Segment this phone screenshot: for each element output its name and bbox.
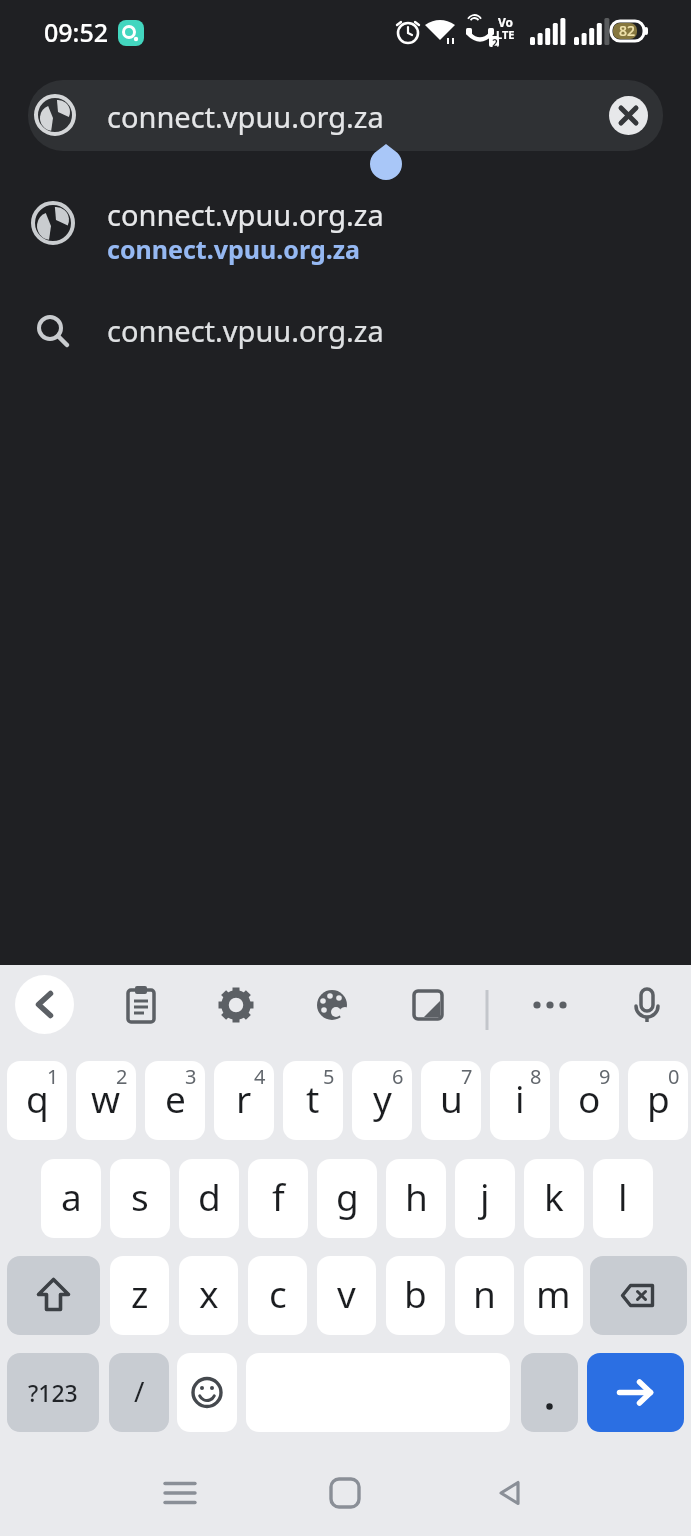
staticText: 3 [185, 1063, 197, 1090]
button[interactable] [315, 1463, 375, 1523]
staticText: connect.vpuu.org.za [107, 97, 384, 136]
button[interactable]: connect.vpuu.org.za [0, 300, 691, 364]
staticText: n [473, 1268, 496, 1318]
button[interactable]: f [248, 1159, 308, 1238]
button[interactable]: a [41, 1159, 101, 1238]
staticText: o [578, 1073, 601, 1123]
button[interactable]: j [455, 1159, 515, 1238]
button[interactable]: n [455, 1256, 514, 1335]
staticText: u [440, 1073, 463, 1123]
button[interactable]: connect.vpuu.org.za [28, 80, 663, 151]
button[interactable] [302, 975, 362, 1035]
staticText: p [647, 1073, 670, 1123]
staticText: r [236, 1073, 252, 1123]
button[interactable] [177, 1353, 237, 1432]
button[interactable]: r [214, 1061, 274, 1140]
staticText: w [91, 1073, 121, 1123]
button[interactable]: k [524, 1159, 584, 1238]
button[interactable] [609, 96, 648, 135]
staticText: f [272, 1171, 285, 1221]
button[interactable] [15, 975, 74, 1034]
button[interactable]: g [317, 1159, 377, 1238]
button[interactable]: s [110, 1159, 170, 1238]
staticText: a [61, 1171, 82, 1221]
button[interactable]: d [179, 1159, 239, 1238]
button[interactable]: ?123 [7, 1353, 99, 1432]
staticText: e [165, 1073, 186, 1123]
staticText: / [134, 1372, 145, 1410]
staticText: 2 [116, 1063, 128, 1090]
staticText: 1 [47, 1063, 59, 1090]
staticText: connect.vpuu.org.za [107, 311, 384, 350]
button[interactable]: m [524, 1256, 583, 1335]
button[interactable] [7, 1256, 100, 1335]
staticText: 4 [254, 1063, 266, 1090]
staticText: 9 [599, 1063, 611, 1090]
staticText: t [306, 1073, 320, 1123]
button[interactable]: y [352, 1061, 412, 1140]
staticText: connect.vpuu.org.za [107, 232, 361, 266]
button[interactable] [150, 1463, 210, 1523]
button[interactable]: x [179, 1256, 238, 1335]
staticText: i [515, 1073, 525, 1123]
staticText: y [373, 1073, 392, 1123]
staticText: j [480, 1171, 490, 1221]
button[interactable]: z [110, 1256, 169, 1335]
button[interactable]: i [490, 1061, 550, 1140]
staticText: b [404, 1268, 427, 1318]
staticText: k [544, 1171, 564, 1221]
staticText: connect.vpuu.org.za [107, 195, 384, 234]
button[interactable] [617, 975, 677, 1035]
button[interactable] [520, 975, 580, 1035]
button[interactable] [398, 975, 458, 1035]
button[interactable]: t [283, 1061, 343, 1140]
button[interactable]: p [628, 1061, 688, 1140]
staticText: h [405, 1171, 428, 1221]
staticText: Vo [498, 14, 514, 30]
staticText: v [337, 1268, 356, 1318]
staticText: q [26, 1073, 49, 1123]
staticText: c [269, 1268, 287, 1318]
staticText: 5 [323, 1063, 335, 1090]
button[interactable]: o [559, 1061, 619, 1140]
button[interactable] [480, 1463, 540, 1523]
staticText: m [536, 1268, 571, 1318]
button[interactable]: q [7, 1061, 67, 1140]
button[interactable]: e [145, 1061, 205, 1140]
button[interactable] [590, 1256, 687, 1335]
button[interactable]: w [76, 1061, 136, 1140]
staticText: 0 [668, 1063, 680, 1090]
button[interactable]: h [386, 1159, 446, 1238]
staticText: 2 [492, 36, 498, 50]
button[interactable]: / [109, 1353, 169, 1432]
button[interactable]: b [386, 1256, 445, 1335]
staticText: d [198, 1171, 221, 1221]
button[interactable]: c [248, 1256, 307, 1335]
button[interactable]: l [593, 1159, 653, 1238]
staticText: 8 [530, 1063, 542, 1090]
button[interactable] [521, 1353, 578, 1432]
button[interactable] [111, 975, 171, 1035]
staticText: 09:52 [44, 15, 109, 49]
staticText: z [131, 1268, 149, 1318]
staticText: ?123 [28, 1377, 78, 1408]
staticText: s [131, 1171, 149, 1221]
staticText: 7 [461, 1063, 473, 1090]
staticText: LTE [496, 27, 515, 42]
button[interactable]: v [317, 1256, 376, 1335]
button[interactable]: u [421, 1061, 481, 1140]
staticText: l [618, 1171, 628, 1221]
staticText: x [199, 1268, 219, 1318]
button[interactable] [206, 975, 266, 1035]
button[interactable]: connect.vpuu.org.za [0, 185, 691, 285]
staticText: g [336, 1171, 359, 1221]
button[interactable] [587, 1353, 684, 1432]
staticText: 82 [619, 21, 636, 40]
staticText: 6 [392, 1063, 404, 1090]
